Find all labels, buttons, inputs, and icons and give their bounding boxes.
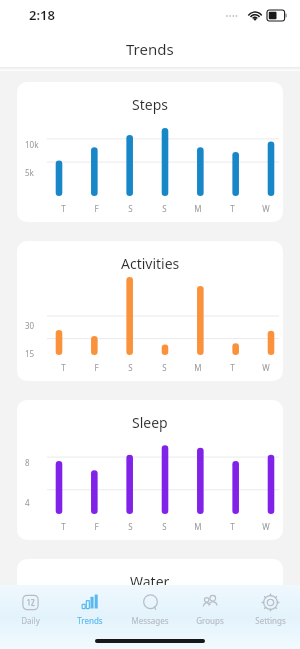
staticText: S [162, 362, 167, 373]
staticText: S [128, 203, 133, 214]
staticText: W [262, 362, 270, 373]
staticText: M [194, 362, 202, 373]
staticText: M [194, 203, 202, 214]
staticText: Water [130, 572, 170, 591]
staticText: 4 [25, 497, 30, 508]
button[interactable]: Water [17, 559, 283, 649]
staticText: F [94, 203, 99, 214]
button[interactable]: Groups [180, 591, 240, 628]
staticText: T [230, 521, 235, 532]
staticText: T [230, 362, 235, 373]
staticText: F [94, 362, 99, 373]
button[interactable]: Steps [17, 82, 283, 222]
staticText: Settings [255, 615, 286, 626]
staticText: Groups [196, 615, 224, 626]
staticText: 8 [25, 457, 30, 468]
staticText: Steps [132, 95, 168, 114]
staticText: Trends [126, 39, 174, 59]
staticText: T [61, 203, 66, 214]
staticText: 30 [25, 320, 35, 331]
staticText: Sleep [132, 413, 168, 432]
staticText: Daily [21, 615, 40, 626]
button[interactable]: Activities [17, 241, 283, 381]
staticText: Trends [77, 615, 103, 626]
button[interactable]: Messages [120, 591, 180, 628]
staticText: W [262, 203, 270, 214]
staticText: Activities [121, 254, 180, 273]
button[interactable]: Trends [60, 591, 120, 628]
staticText: S [128, 521, 133, 532]
staticText: S [162, 203, 167, 214]
staticText: Messages [131, 615, 169, 626]
staticText: W [262, 521, 270, 532]
button[interactable]: Sleep [17, 400, 283, 540]
staticText: M [194, 521, 202, 532]
button[interactable]: Daily [0, 591, 60, 628]
staticText: 5k [25, 167, 34, 178]
staticText: S [128, 362, 133, 373]
staticText: F [94, 521, 99, 532]
staticText: T [61, 362, 66, 373]
staticText: 15 [25, 348, 35, 359]
staticText: S [162, 521, 167, 532]
button[interactable]: Settings [240, 591, 300, 628]
staticText: 10k [25, 139, 39, 150]
staticText: 2:18 [29, 6, 55, 24]
staticText: T [61, 521, 66, 532]
staticText: T [230, 203, 235, 214]
